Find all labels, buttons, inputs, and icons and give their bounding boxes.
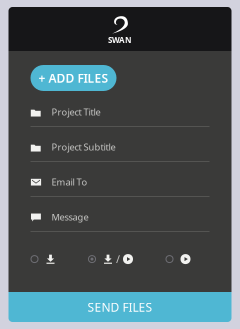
staticText: Project Title bbox=[51, 106, 100, 118]
button[interactable]: Project Subtitle bbox=[8, 127, 231, 162]
button[interactable]: Email To bbox=[8, 162, 231, 197]
button[interactable]: Download only bbox=[30, 254, 55, 264]
staticText: SEND FILES bbox=[87, 299, 152, 315]
button[interactable]: Stream only bbox=[165, 254, 190, 264]
button[interactable]: Download and stream bbox=[88, 252, 133, 266]
staticText: Email To bbox=[51, 176, 87, 188]
button[interactable]: Message bbox=[8, 197, 231, 232]
staticText: + ADD FILES bbox=[38, 70, 108, 86]
staticText: SWAN bbox=[108, 35, 132, 45]
staticText: Message bbox=[51, 211, 88, 223]
button[interactable]: + ADD FILES bbox=[30, 65, 116, 91]
staticText: Project Subtitle bbox=[51, 141, 115, 153]
button[interactable]: Project Title bbox=[8, 92, 231, 127]
staticText: / bbox=[116, 252, 120, 266]
button[interactable]: SEND FILES bbox=[8, 292, 231, 322]
